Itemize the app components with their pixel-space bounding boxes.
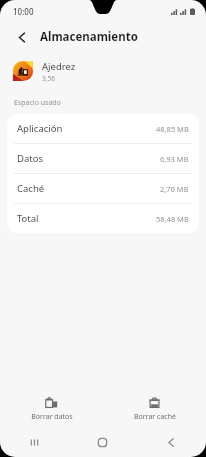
staticText: 10:00	[13, 6, 34, 17]
staticText: Borrar datos	[31, 412, 73, 422]
button[interactable]: Caché	[7, 174, 199, 203]
staticText: Datos	[17, 152, 43, 165]
staticText: Almacenamiento	[40, 29, 138, 45]
button[interactable]: Total	[7, 204, 199, 233]
staticText: Borrar caché	[134, 412, 176, 422]
button[interactable]: Recents	[0, 428, 68, 457]
button[interactable]: Aplicación	[7, 114, 199, 143]
staticText: 3,56	[42, 74, 55, 83]
button[interactable]: Back	[137, 428, 206, 457]
staticText: Aplicación	[17, 122, 63, 135]
staticText: 58,48 MB	[156, 214, 189, 224]
staticText: 2,70 MB	[160, 184, 189, 194]
button[interactable]: Ajedrez	[0, 52, 206, 90]
button[interactable]: Borrar datos	[0, 390, 103, 428]
button[interactable]: Borrar caché	[103, 390, 206, 428]
staticText: Caché	[17, 182, 45, 195]
staticText: 48,85 MB	[156, 124, 189, 134]
button[interactable]: Datos	[7, 144, 199, 173]
staticText: Espacio usado	[14, 98, 61, 108]
button[interactable]: Home	[68, 428, 137, 457]
staticText: Ajedrez	[42, 60, 76, 73]
staticText: 6,93 MB	[160, 154, 189, 164]
button[interactable]: Back	[13, 28, 31, 46]
staticText: Total	[17, 212, 39, 225]
